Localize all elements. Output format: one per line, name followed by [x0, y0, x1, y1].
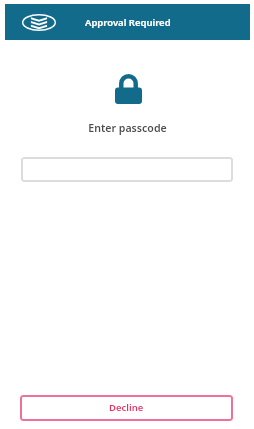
button[interactable]	[21, 157, 233, 182]
other: Lock	[115, 74, 142, 104]
staticText: Enter passcode	[88, 121, 167, 135]
button[interactable]: Decline	[20, 395, 233, 421]
staticText: Approval Required	[85, 16, 171, 29]
staticText: Decline	[109, 401, 144, 414]
button[interactable]: App logo	[22, 14, 56, 31]
